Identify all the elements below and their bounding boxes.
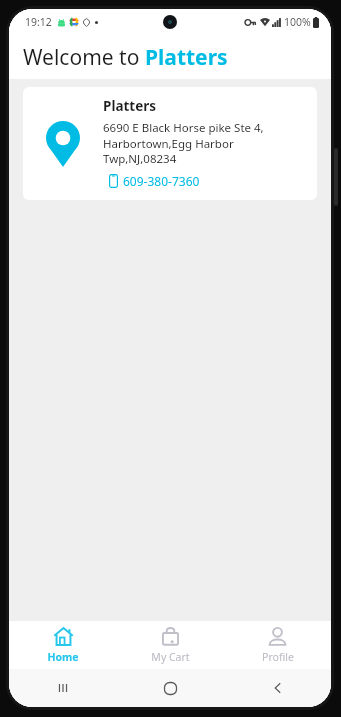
button[interactable]: My Cart: [117, 621, 224, 669]
button[interactable]: Platters: [23, 87, 317, 200]
staticText: Profile: [262, 650, 294, 664]
staticText: 100%: [284, 15, 311, 29]
staticText: 609-380-7360: [123, 173, 200, 189]
staticText: My Cart: [151, 650, 190, 664]
staticText: Platters: [145, 43, 228, 72]
button[interactable]: 609-380-7360: [103, 172, 204, 190]
staticText: Welcome to: [23, 43, 145, 72]
staticText: 6690 E Black Horse pike Ste 4, Harbortow…: [103, 120, 307, 166]
button[interactable]: Recent apps: [9, 669, 117, 707]
staticText: Platters: [103, 97, 157, 115]
button[interactable]: Home: [117, 669, 224, 707]
button[interactable]: Profile: [224, 621, 331, 669]
staticText: Home: [47, 650, 79, 664]
button[interactable]: Back: [224, 669, 331, 707]
staticText: 19:12: [25, 15, 52, 29]
button[interactable]: Home: [9, 621, 117, 669]
